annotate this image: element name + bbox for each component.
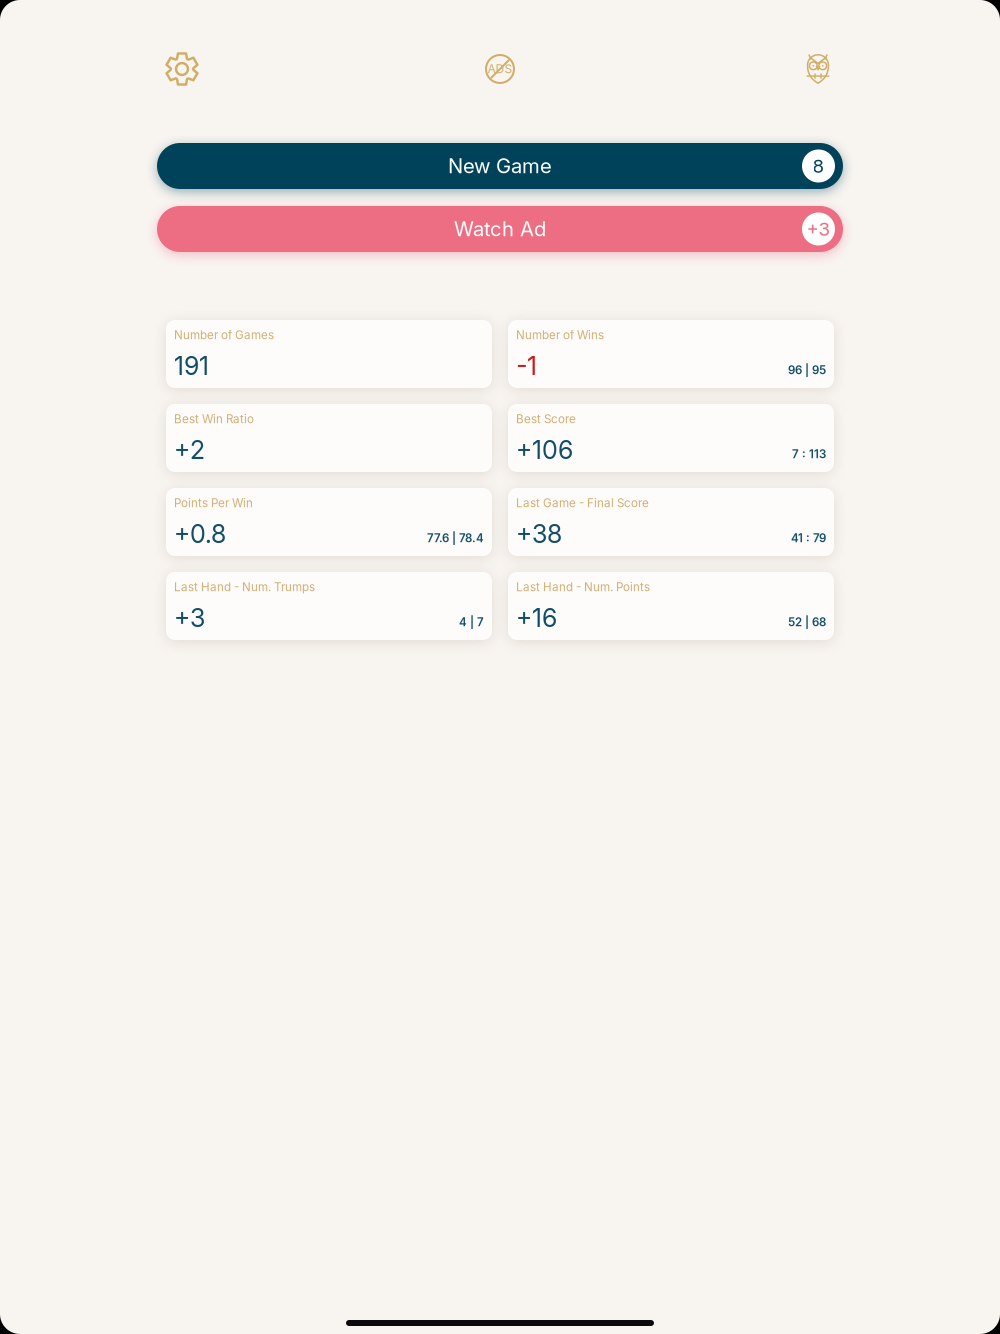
staticText: Watch Ad: [454, 217, 546, 241]
staticText: Number of Games: [174, 328, 274, 342]
button[interactable]: Watch Ad: [157, 206, 843, 252]
staticText: New Game: [448, 154, 552, 178]
staticText: 52 | 68: [788, 615, 826, 629]
staticText: 4 | 7: [459, 615, 484, 629]
staticText: 8: [812, 155, 824, 177]
staticText: ADS: [487, 62, 512, 76]
button[interactable]: About: [790, 49, 846, 89]
staticText: 191: [174, 351, 209, 381]
staticText: +38: [516, 519, 562, 549]
staticText: Last Hand - Num. Trumps: [174, 580, 315, 594]
staticText: 7 : 113: [792, 447, 826, 461]
button[interactable]: New Game: [157, 143, 843, 189]
staticText: +16: [516, 603, 557, 633]
staticText: Number of Wins: [516, 328, 604, 342]
staticText: +106: [516, 435, 573, 465]
staticText: Best Win Ratio: [174, 412, 254, 426]
staticText: Last Hand - Num. Points: [516, 580, 650, 594]
staticText: +3: [174, 603, 205, 633]
button[interactable]: Settings: [154, 49, 210, 89]
staticText: Best Score: [516, 412, 576, 426]
staticText: +2: [174, 435, 205, 465]
staticText: 41 : 79: [791, 531, 826, 545]
staticText: 96 | 95: [788, 363, 826, 377]
staticText: +3: [806, 218, 830, 240]
staticText: Points Per Win: [174, 496, 253, 510]
button[interactable]: Remove Ads: [472, 49, 528, 89]
staticText: Last Game - Final Score: [516, 496, 649, 510]
staticText: -1: [516, 351, 537, 381]
staticText: +0.8: [174, 519, 226, 549]
staticText: 77.6 | 78.4: [427, 531, 484, 545]
